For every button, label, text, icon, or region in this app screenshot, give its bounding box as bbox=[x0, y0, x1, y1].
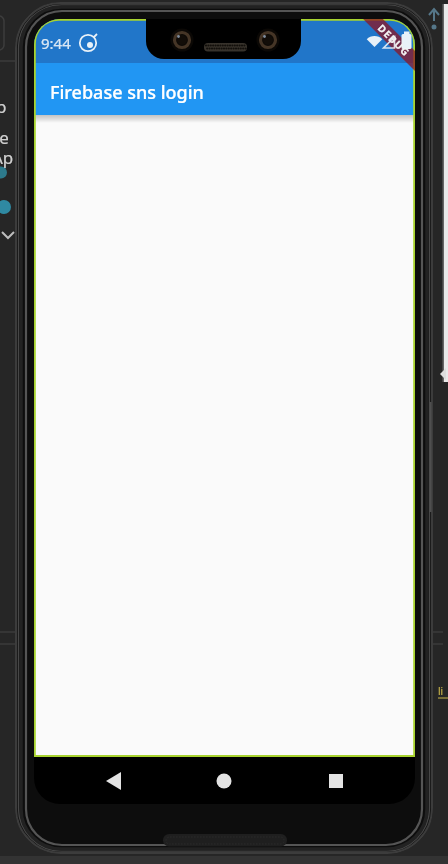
staticText: Firebase sns login bbox=[50, 80, 204, 105]
staticText: li bbox=[438, 684, 444, 698]
staticText: te bbox=[0, 126, 9, 149]
button[interactable] bbox=[203, 763, 245, 799]
button[interactable] bbox=[93, 763, 135, 799]
staticText: 9:44 bbox=[41, 33, 71, 53]
staticText: Ap bbox=[0, 146, 14, 169]
button[interactable] bbox=[315, 763, 357, 799]
staticText: p bbox=[0, 95, 7, 118]
staticText: DEBUG bbox=[375, 21, 414, 60]
